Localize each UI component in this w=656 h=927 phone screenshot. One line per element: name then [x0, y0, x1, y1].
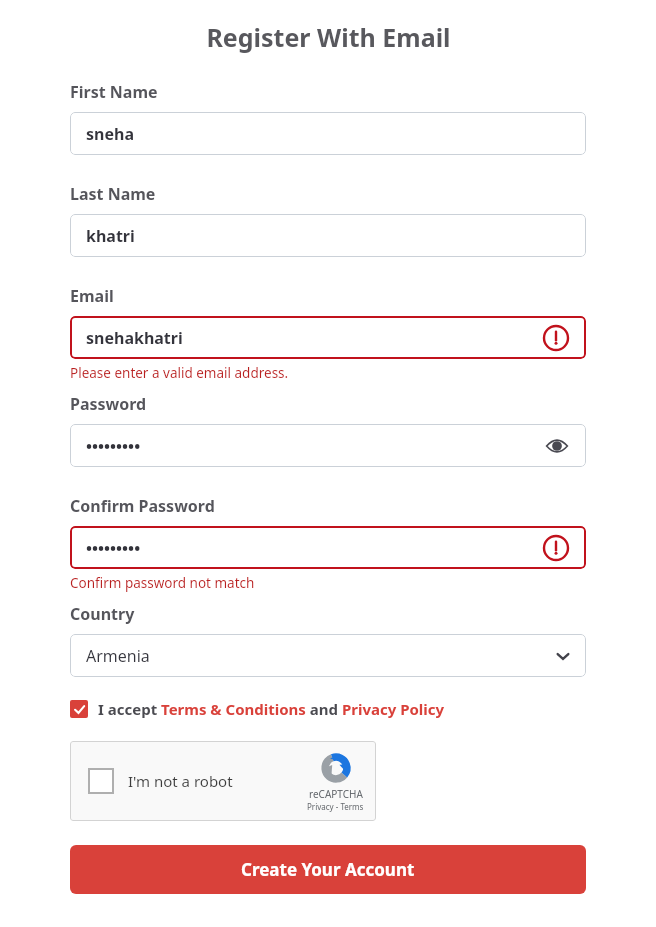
staticText: ••••••••• — [86, 537, 141, 559]
staticText: Email — [70, 285, 114, 307]
staticText: Password — [70, 393, 147, 415]
staticText: Please enter a valid email address. — [70, 364, 289, 382]
button[interactable]: I'm not a robot checkbox — [88, 768, 114, 794]
staticText: Armenia — [86, 645, 150, 667]
staticText: Register With Email — [206, 20, 451, 54]
button[interactable]: ••••••••• — [70, 424, 586, 467]
button[interactable]: I accept Terms & Conditions and Privacy … — [70, 699, 586, 719]
staticText: ••••••••• — [86, 435, 141, 457]
staticText: Last Name — [70, 183, 156, 205]
button[interactable]: sneha — [70, 112, 586, 155]
staticText: khatri — [86, 225, 135, 247]
staticText: I'm not a robot — [128, 771, 233, 791]
button[interactable]: Show password — [544, 433, 570, 459]
button[interactable]: snehakhatri — [70, 316, 586, 359]
staticText: Create Your Account — [241, 858, 415, 881]
button[interactable]: khatri — [70, 214, 586, 257]
button[interactable]: ••••••••• — [70, 526, 586, 569]
staticText: snehakhatri — [86, 327, 183, 349]
button[interactable]: I'm not a robot checkbox — [70, 741, 376, 821]
staticText: Privacy - Terms — [307, 801, 364, 812]
staticText: Country — [70, 603, 135, 625]
staticText: First Name — [70, 81, 158, 103]
staticText: Confirm Password — [70, 495, 215, 517]
staticText: I accept Terms & Conditions and Privacy … — [98, 699, 445, 719]
staticText: reCAPTCHA — [309, 787, 363, 801]
staticText: Confirm password not match — [70, 574, 255, 592]
button[interactable]: Create Your Account — [70, 845, 586, 894]
staticText: sneha — [86, 123, 134, 145]
button[interactable]: Armenia — [70, 634, 586, 677]
